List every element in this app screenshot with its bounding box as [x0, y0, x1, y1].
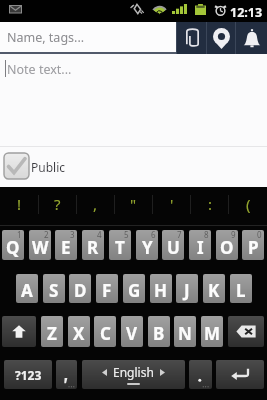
- staticText: ": [130, 194, 137, 214]
- staticText: 9: [231, 230, 236, 240]
- button[interactable]: Comma: [56, 360, 77, 389]
- staticText: !: [17, 194, 22, 214]
- staticText: Public: [31, 159, 66, 175]
- staticText: X: [73, 322, 85, 345]
- staticText: P: [248, 236, 259, 259]
- staticText: E: [61, 236, 71, 259]
- button[interactable]: 4: [82, 230, 104, 260]
- staticText: (: [246, 194, 251, 214]
- button[interactable]: D: [69, 274, 91, 303]
- button[interactable]: X: [68, 316, 90, 347]
- staticText: Name, tags...: [7, 29, 85, 46]
- staticText: H: [154, 279, 168, 302]
- button[interactable]: 0: [242, 230, 264, 260]
- staticText: J: [184, 279, 190, 302]
- staticText: K: [208, 279, 220, 302]
- staticText: ': [170, 194, 174, 214]
- staticText: A: [21, 279, 33, 302]
- staticText: F: [102, 279, 112, 302]
- staticText: Y: [142, 236, 153, 259]
- staticText: U: [167, 236, 180, 259]
- button[interactable]: L: [230, 274, 252, 303]
- staticText: ?: [54, 194, 61, 214]
- staticText: 8: [204, 230, 209, 240]
- button[interactable]: J: [176, 274, 198, 303]
- button[interactable]: M: [201, 316, 223, 347]
- button[interactable]: H: [150, 274, 172, 303]
- staticText: 0: [257, 230, 262, 240]
- button[interactable]: ?: [38, 187, 76, 221]
- staticText: 2: [44, 230, 49, 240]
- staticText: ?123: [15, 367, 42, 383]
- staticText: 6: [151, 230, 156, 240]
- button[interactable]: Reminder: [236, 22, 267, 54]
- button[interactable]: Name, tags...: [0, 22, 176, 52]
- button[interactable]: Note text...: [0, 54, 267, 146]
- staticText: D: [74, 279, 87, 302]
- button[interactable]: 5: [109, 230, 131, 260]
- button[interactable]: A: [16, 274, 38, 303]
- staticText: I: [197, 236, 204, 259]
- staticText: :: [208, 194, 213, 214]
- button[interactable]: K: [203, 274, 225, 303]
- button[interactable]: Enter: [216, 360, 264, 389]
- staticText: 7: [177, 230, 182, 240]
- staticText: O: [220, 236, 234, 259]
- button[interactable]: 9: [216, 230, 238, 260]
- staticText: L: [236, 279, 246, 302]
- button[interactable]: :: [191, 187, 229, 221]
- staticText: 5: [124, 230, 129, 240]
- button[interactable]: F: [96, 274, 118, 303]
- staticText: English: [113, 364, 154, 380]
- button[interactable]: Public: [0, 147, 267, 187]
- staticText: R: [87, 236, 99, 259]
- button[interactable]: Z: [41, 316, 63, 347]
- button[interactable]: C: [94, 316, 116, 347]
- staticText: C: [100, 322, 111, 345]
- staticText: Note text...: [7, 61, 72, 78]
- button[interactable]: Space, English: [82, 360, 185, 389]
- button[interactable]: !: [0, 187, 38, 221]
- staticText: 12:13: [230, 4, 263, 21]
- staticText: Z: [47, 322, 57, 345]
- staticText: 1: [17, 230, 22, 240]
- button[interactable]: ,: [76, 187, 114, 221]
- staticText: W: [32, 236, 49, 259]
- staticText: Q: [6, 236, 20, 259]
- button[interactable]: ?123: [4, 360, 52, 389]
- staticText: 3: [70, 230, 75, 240]
- button[interactable]: 8: [189, 230, 211, 260]
- staticText: T: [115, 236, 125, 259]
- button[interactable]: Period: [189, 360, 212, 389]
- button[interactable]: ': [153, 187, 191, 221]
- button[interactable]: B: [148, 316, 170, 347]
- staticText: ,: [93, 194, 98, 214]
- button[interactable]: Attach: [177, 22, 207, 54]
- button[interactable]: 1: [2, 230, 24, 260]
- staticText: B: [153, 322, 165, 345]
- staticText: M: [204, 322, 221, 345]
- staticText: N: [178, 322, 192, 345]
- staticText: 4: [97, 230, 102, 240]
- staticText: S: [49, 279, 59, 302]
- staticText: G: [128, 279, 141, 302]
- button[interactable]: V: [121, 316, 143, 347]
- staticText: V: [126, 322, 138, 345]
- button[interactable]: N: [174, 316, 196, 347]
- button[interactable]: 6: [136, 230, 158, 260]
- button[interactable]: ": [114, 187, 152, 221]
- button[interactable]: G: [123, 274, 145, 303]
- button[interactable]: Shift: [2, 316, 36, 347]
- button[interactable]: Backspace: [228, 316, 264, 347]
- button[interactable]: S: [43, 274, 65, 303]
- button[interactable]: Location: [207, 22, 235, 54]
- button[interactable]: 3: [55, 230, 77, 260]
- button[interactable]: (: [229, 187, 267, 221]
- button[interactable]: 2: [29, 230, 51, 260]
- button[interactable]: 7: [162, 230, 184, 260]
